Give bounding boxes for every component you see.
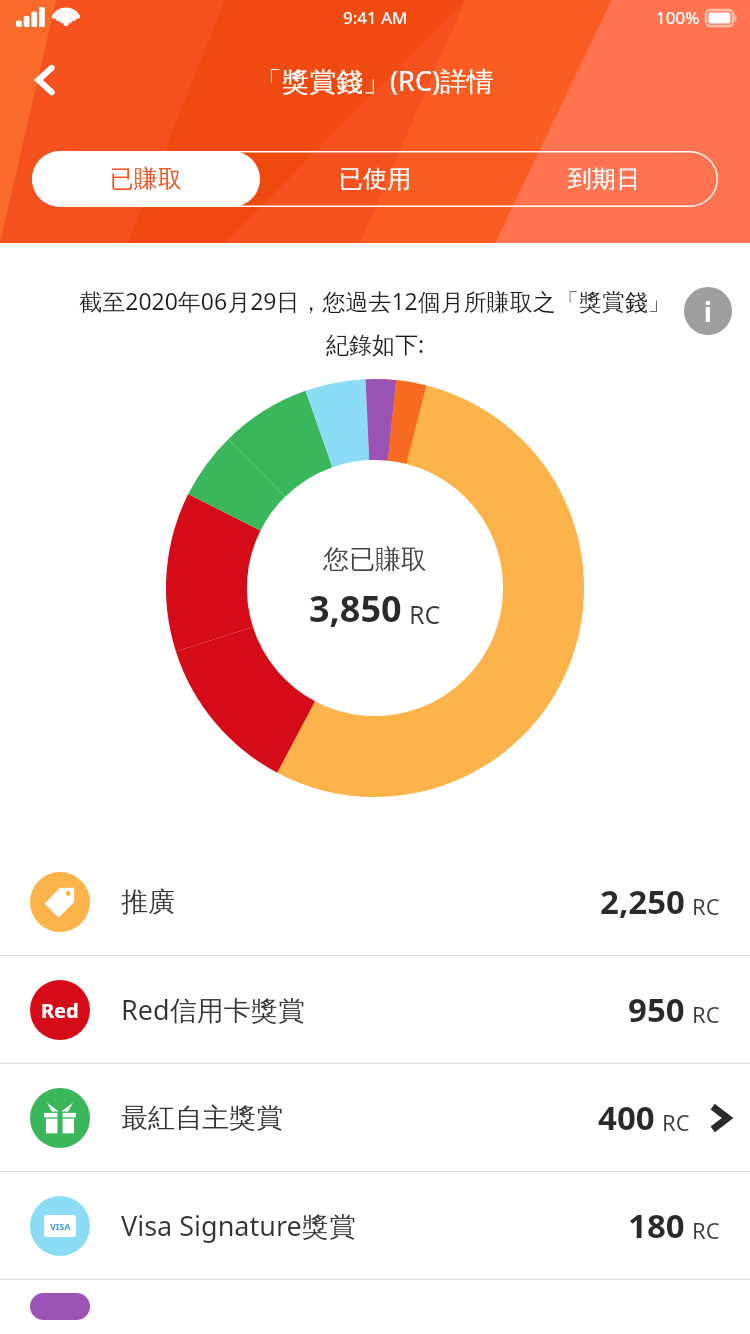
staticText: RC [692, 999, 720, 1029]
staticText: 100% [656, 6, 700, 29]
button[interactable]: Red [0, 956, 750, 1063]
staticText: Red信用卡獎賞 [121, 991, 305, 1028]
button[interactable]: 已賺取 [32, 151, 260, 207]
staticText: 2,250 [600, 879, 685, 924]
staticText: 9:41 AM [343, 6, 408, 29]
staticText: 180 [628, 1203, 685, 1248]
staticText: 3,850 [309, 584, 402, 633]
button[interactable]: 最紅自主獎賞 [0, 1064, 750, 1171]
staticText: Visa Signature獎賞 [121, 1207, 356, 1244]
staticText: Red [41, 997, 79, 1024]
staticText: 已使用 [339, 164, 411, 194]
staticText: 推廣 [121, 885, 175, 919]
staticText: i [704, 294, 712, 329]
staticText: 400 [598, 1095, 655, 1140]
staticText: RC [692, 891, 720, 921]
staticText: 最紅自主獎賞 [121, 1101, 283, 1135]
button[interactable]: 到期日 [489, 151, 718, 207]
button[interactable]: 已使用 [260, 151, 489, 207]
staticText: 到期日 [568, 164, 640, 194]
staticText: 您已賺取 [323, 543, 427, 576]
staticText: 950 [628, 987, 685, 1032]
staticText: 「獎賞錢」(RC)詳情 [255, 62, 495, 99]
button[interactable]: Information [684, 287, 732, 335]
button[interactable]: 推廣 [0, 848, 750, 955]
staticText: VISA [50, 1220, 71, 1232]
staticText: RC [692, 1215, 720, 1245]
staticText: 截至2020年06月29日，您過去12個月所賺取之「獎賞錢」紀錄如下: [78, 285, 672, 360]
staticText: 已賺取 [110, 164, 182, 194]
staticText: RC [409, 597, 441, 631]
button[interactable]: Back [18, 52, 74, 108]
staticText: RC [662, 1107, 690, 1137]
button[interactable]: VISA [0, 1172, 750, 1279]
